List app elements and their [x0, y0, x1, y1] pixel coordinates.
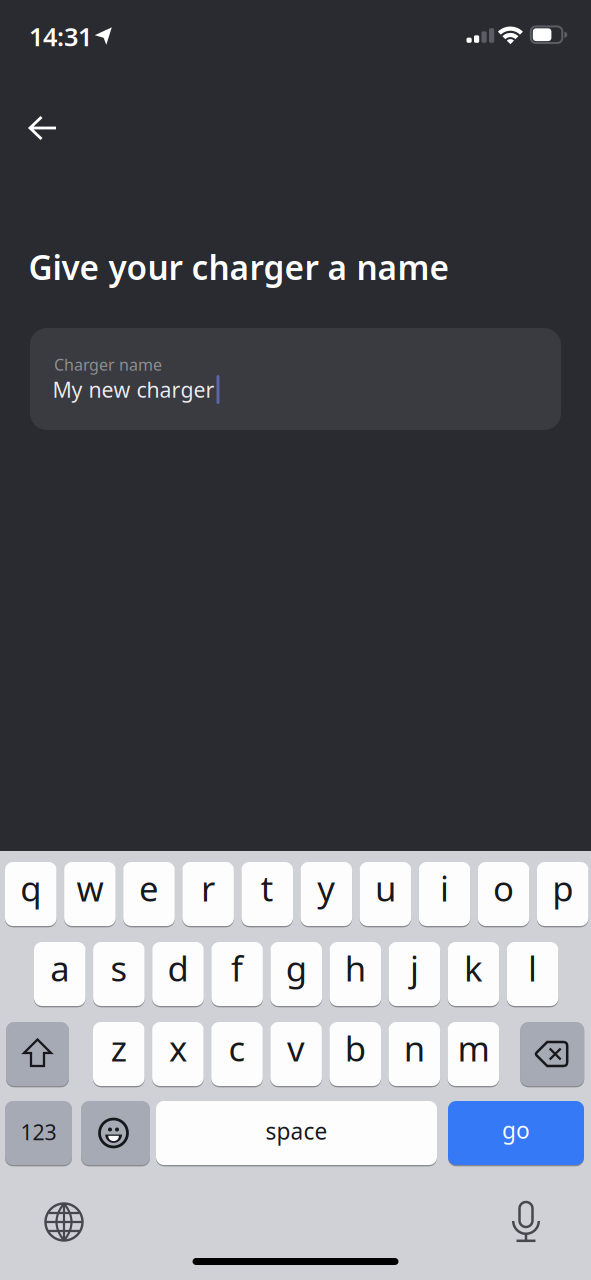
staticText: My new charger	[52, 375, 214, 404]
button[interactable]: f	[211, 942, 263, 1006]
staticText: o	[493, 865, 514, 911]
staticText: c	[228, 1025, 245, 1071]
button[interactable]: go	[448, 1101, 584, 1165]
button[interactable]: Back	[20, 114, 66, 142]
staticText: j	[410, 945, 419, 991]
staticText: go	[502, 1115, 530, 1145]
staticText: Charger name	[54, 354, 162, 375]
button[interactable]: w	[64, 862, 116, 926]
staticText: e	[139, 865, 159, 911]
button[interactable]: Dictate	[504, 1201, 548, 1245]
button[interactable]: m	[448, 1022, 499, 1086]
staticText: u	[375, 865, 396, 911]
button[interactable]: g	[270, 942, 322, 1006]
button[interactable]: d	[152, 942, 204, 1006]
button[interactable]: v	[270, 1022, 322, 1086]
staticText: s	[110, 945, 127, 991]
button[interactable]: u	[360, 862, 411, 926]
staticText: l	[528, 945, 537, 991]
staticText: Give your charger a name	[28, 245, 449, 289]
button[interactable]: z	[93, 1022, 145, 1086]
staticText: g	[286, 945, 307, 991]
button[interactable]: o	[478, 862, 529, 926]
staticText: h	[345, 945, 366, 991]
staticText: r	[201, 865, 215, 911]
staticText: q	[20, 865, 41, 911]
button[interactable]: Next keyboard	[42, 1200, 86, 1244]
button[interactable]: t	[241, 862, 293, 926]
button[interactable]: p	[537, 862, 588, 926]
staticText: space	[265, 1116, 327, 1146]
button[interactable]: Delete	[520, 1022, 584, 1086]
staticText: t	[261, 865, 274, 911]
button[interactable]: l	[507, 942, 558, 1006]
button[interactable]: 123	[5, 1101, 72, 1165]
button[interactable]: space	[156, 1101, 437, 1165]
button[interactable]: r	[182, 862, 234, 926]
staticText: p	[552, 865, 573, 911]
staticText: y	[317, 865, 335, 911]
button[interactable]: a	[34, 942, 86, 1006]
button[interactable]: b	[329, 1022, 381, 1086]
staticText: 123	[20, 1118, 56, 1146]
staticText: a	[50, 945, 69, 991]
button[interactable]: k	[448, 942, 499, 1006]
staticText: m	[457, 1025, 489, 1071]
staticText: v	[287, 1025, 305, 1071]
button[interactable]: e	[123, 862, 175, 926]
staticText: n	[404, 1025, 425, 1071]
staticText: x	[169, 1025, 187, 1071]
staticText: 14:31	[29, 20, 92, 53]
staticText: w	[76, 865, 103, 911]
button[interactable]: x	[152, 1022, 204, 1086]
button[interactable]: c	[211, 1022, 263, 1086]
button[interactable]: h	[329, 942, 381, 1006]
button[interactable]: y	[300, 862, 352, 926]
staticText: b	[345, 1025, 366, 1071]
button[interactable]: Emoji	[81, 1101, 150, 1165]
staticText: d	[167, 945, 188, 991]
button[interactable]: n	[388, 1022, 440, 1086]
button[interactable]: q	[5, 862, 57, 926]
button[interactable]: j	[389, 942, 440, 1006]
button[interactable]: Shift	[6, 1022, 69, 1086]
button[interactable]: s	[93, 942, 145, 1006]
staticText: k	[464, 945, 483, 991]
button[interactable]: i	[419, 862, 470, 926]
staticText: f	[231, 945, 243, 991]
button[interactable]: Charger name, My new charger	[30, 328, 561, 430]
staticText: z	[111, 1025, 127, 1071]
staticText: i	[440, 865, 449, 911]
